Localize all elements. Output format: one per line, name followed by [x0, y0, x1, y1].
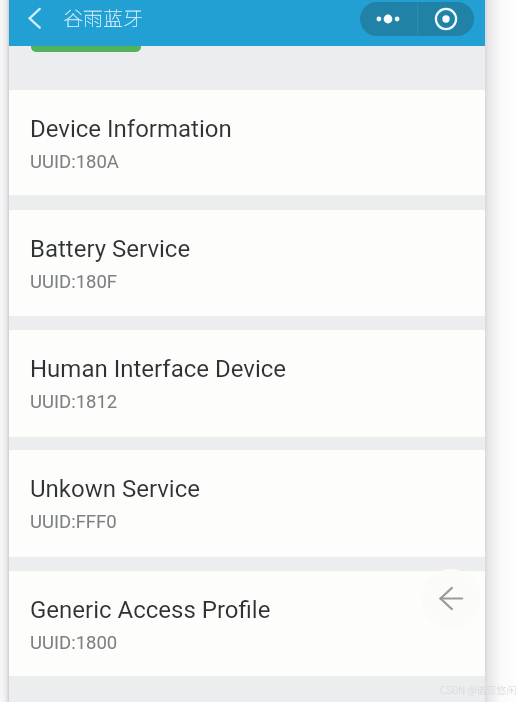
button[interactable]: Battery Service — [9, 210, 485, 316]
staticText: Human Interface Device — [30, 355, 287, 383]
button[interactable] — [31, 22, 141, 52]
button[interactable]: Unkown Service — [9, 450, 485, 557]
button[interactable]: Device Information — [9, 90, 485, 195]
staticText: UUID:180F — [30, 271, 118, 293]
staticText: UUID:1812 — [30, 391, 118, 413]
staticText: UUID:180A — [30, 151, 119, 173]
button[interactable]: More options — [360, 2, 417, 36]
button[interactable]: Human Interface Device — [9, 330, 485, 437]
staticText: Generic Access Profile — [30, 596, 271, 624]
staticText: Unkown Service — [30, 475, 200, 503]
staticText: UUID:FFF0 — [30, 511, 117, 533]
button[interactable]: Close — [417, 2, 474, 36]
button[interactable]: Generic Access Profile — [9, 571, 485, 676]
button[interactable]: Back — [421, 569, 481, 629]
staticText: Battery Service — [30, 235, 191, 263]
button[interactable]: Back — [9, 0, 55, 46]
staticText: 谷雨蓝牙 — [63, 3, 143, 32]
staticText: Device Information — [30, 115, 232, 143]
staticText: CSDN @诺亚悠闲 — [440, 682, 517, 696]
staticText: UUID:1800 — [30, 632, 118, 654]
